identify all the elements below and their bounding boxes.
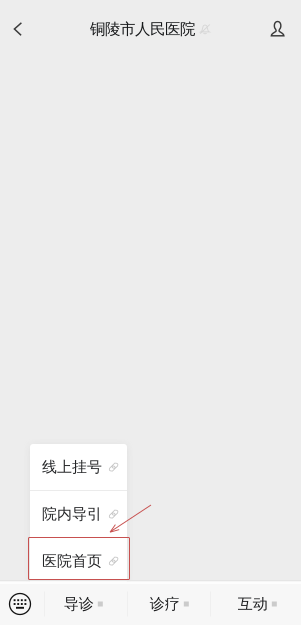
button[interactable]: Back	[0, 7, 36, 51]
staticText: 互动	[238, 594, 268, 613]
button[interactable]: 诊疗	[128, 583, 210, 625]
button[interactable]: 医院首页	[30, 538, 127, 584]
staticText: 铜陵市人民医院	[90, 19, 195, 39]
staticText: 导诊	[64, 594, 94, 613]
button[interactable]: 互动	[211, 583, 301, 625]
staticText: 医院首页	[42, 552, 102, 570]
button[interactable]: 线上挂号	[30, 444, 127, 490]
staticText: 诊疗	[150, 594, 180, 613]
button[interactable]: Keyboard	[0, 583, 44, 625]
button[interactable]: 导诊	[45, 583, 127, 625]
button[interactable]: 院内导引	[30, 491, 127, 537]
button[interactable]: Profile	[255, 7, 301, 51]
staticText: 线上挂号	[42, 458, 102, 476]
staticText: 院内导引	[42, 505, 102, 523]
